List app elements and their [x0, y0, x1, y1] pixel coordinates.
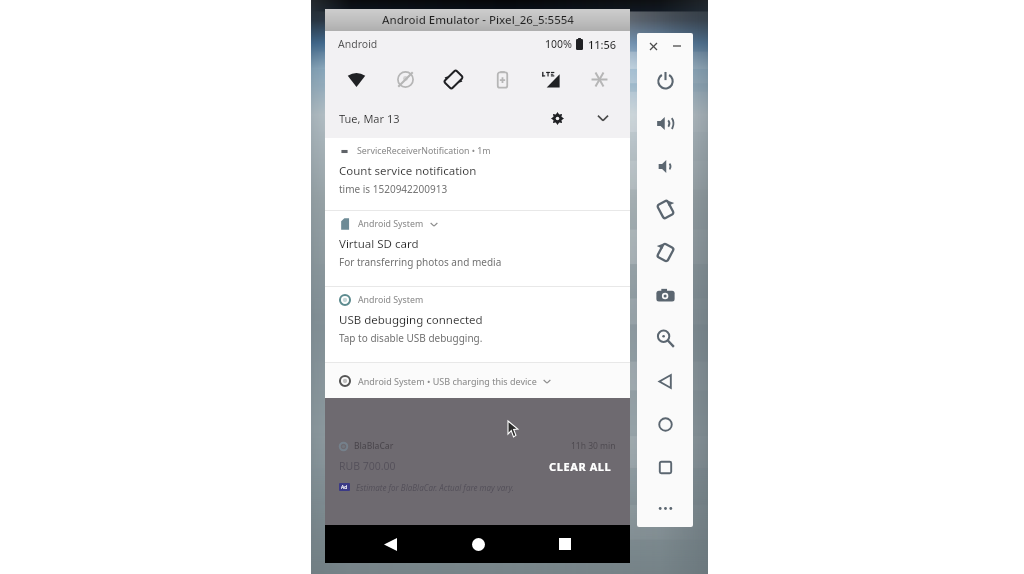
staticText: Estimate for BlaBlaCar. Actual fare may …: [356, 482, 514, 493]
staticText: For transferring photos and media: [339, 255, 502, 269]
staticText: Tue, Mar 13: [339, 111, 400, 126]
staticText: USB debugging connected: [339, 312, 483, 328]
button[interactable]: Home: [455, 525, 501, 563]
staticText: 11:56: [588, 37, 617, 52]
button[interactable]: Rotate right: [637, 231, 693, 274]
button[interactable]: Power: [637, 59, 693, 102]
button[interactable]: Android System • USB charging this devic…: [325, 363, 630, 398]
staticText: Count service notification: [339, 163, 477, 179]
staticText: 11h 30 min: [571, 440, 616, 452]
staticText: Android System • USB charging this devic…: [358, 375, 537, 387]
button[interactable]: Settings: [544, 105, 570, 131]
button[interactable]: Home: [637, 403, 693, 446]
staticText: RUB 700.00: [339, 459, 396, 473]
staticText: Android System: [358, 218, 424, 230]
button[interactable]: Flashlight: [582, 62, 616, 96]
button[interactable]: Android System: [325, 287, 630, 362]
staticText: Android: [338, 37, 378, 51]
staticText: CLEAR ALL: [549, 459, 612, 474]
staticText: Android Emulator - Pixel_26_5:5554: [382, 12, 574, 28]
staticText: Virtual SD card: [339, 236, 419, 252]
button[interactable]: Recent apps: [542, 525, 588, 563]
button[interactable]: Location off: [388, 62, 422, 96]
staticText: ServiceReceiverNotification • 1m: [357, 145, 491, 157]
button[interactable]: Overview: [637, 446, 693, 489]
button[interactable]: Back: [637, 360, 693, 403]
button[interactable]: CLEAR ALL: [545, 457, 616, 476]
button[interactable]: Wi-Fi: [339, 62, 373, 96]
button[interactable]: More: [637, 489, 693, 527]
button[interactable]: Back: [367, 525, 413, 563]
button[interactable]: Close: [646, 39, 660, 53]
button[interactable]: Android System: [325, 211, 630, 286]
button[interactable]: Mobile data LTE: [533, 62, 567, 96]
staticText: 100%: [545, 37, 572, 51]
button[interactable]: Expand quick settings: [590, 105, 616, 131]
button[interactable]: Minimize: [670, 39, 684, 53]
button[interactable]: Rotate left: [637, 188, 693, 231]
button[interactable]: ServiceReceiverNotification • 1m: [325, 138, 630, 210]
staticText: Ad: [341, 484, 348, 491]
staticText: Tap to disable USB debugging.: [339, 331, 483, 345]
button[interactable]: Take screenshot: [637, 274, 693, 317]
button[interactable]: Volume down: [637, 145, 693, 188]
button[interactable]: Zoom: [637, 317, 693, 360]
staticText: time is 1520942200913: [339, 182, 448, 196]
staticText: BlaBlaCar: [354, 440, 394, 452]
staticText: Android System: [358, 294, 424, 306]
button[interactable]: Battery saver: [485, 62, 519, 96]
button[interactable]: Volume up: [637, 102, 693, 145]
button[interactable]: Auto rotate: [436, 62, 470, 96]
